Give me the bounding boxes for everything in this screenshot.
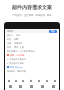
button[interactable]: Tool: [43, 79, 51, 82]
staticText: 发送: [51, 30, 55, 33]
button[interactable]: Tool: [37, 85, 48, 88]
button[interactable]: 主题: [7, 41, 57, 45]
staticText: 抄送: [7, 38, 12, 41]
staticText: 1. 完成首页文案校对: [7, 58, 27, 61]
staticText: 需求 · 文案: [14, 46, 25, 49]
staticText: 谢谢配合，随时沟通。: [7, 70, 28, 73]
button[interactable]: Tool: [51, 79, 59, 82]
staticText: 张伟: [16, 34, 21, 37]
staticText: 邮件内容需求文案: [0, 4, 64, 10]
button[interactable]: Tool: [19, 79, 27, 82]
staticText: 本周进度: [14, 42, 23, 45]
staticText: 产品设计 · 交互视觉 · 前端开发 · 测试: [0, 13, 64, 16]
button[interactable]: 抄送: [7, 37, 57, 41]
button[interactable]: 需求文档.pdf: [7, 65, 57, 69]
button[interactable]: Tool: [35, 79, 43, 82]
button[interactable]: 发送: [51, 30, 55, 33]
staticText: 各位同事好，以下是本周清单：: [7, 50, 37, 53]
button[interactable]: Tool: [26, 85, 37, 88]
button[interactable]: Tool: [5, 85, 15, 88]
staticText: 重要：今日回复: [10, 54, 25, 57]
button[interactable]: Tool: [12, 79, 19, 82]
button[interactable]: Tool: [5, 79, 12, 82]
staticText: 需求文档.pdf: [10, 66, 23, 69]
button[interactable]: 标签: [7, 45, 57, 49]
button[interactable]: Tool: [27, 79, 35, 82]
staticText: 李娜: [14, 38, 19, 41]
staticText: 写邮件: [7, 30, 14, 33]
button[interactable]: 收件人: [7, 33, 57, 37]
staticText: 标签: [7, 46, 12, 49]
button[interactable]: Tool: [48, 85, 59, 88]
staticText: 2. 同步多语言词条: [7, 62, 24, 65]
button[interactable]: Tool: [15, 85, 26, 88]
staticText: 收件人: [7, 34, 14, 37]
staticText: 主题: [7, 42, 12, 45]
